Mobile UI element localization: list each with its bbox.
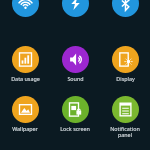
button[interactable]: Download booster — [50, 0, 100, 19]
staticText: Lock screen — [60, 125, 90, 132]
button[interactable]: Wallpaper — [0, 96, 50, 132]
staticText: Display — [116, 75, 135, 82]
button[interactable]: Sound — [50, 46, 100, 82]
staticText: Notification panel — [110, 125, 140, 139]
button[interactable]: Data usage — [0, 46, 50, 82]
button[interactable]: Bluetooth — [100, 0, 150, 19]
staticText: Wallpaper — [12, 125, 38, 132]
staticText: Sound — [67, 75, 84, 82]
button[interactable]: Notification panel — [100, 96, 150, 139]
button[interactable]: Lock screen — [50, 96, 100, 132]
button[interactable]: Wi-Fi — [0, 0, 50, 19]
button[interactable]: Display — [100, 46, 150, 82]
staticText: Data usage — [11, 75, 40, 82]
